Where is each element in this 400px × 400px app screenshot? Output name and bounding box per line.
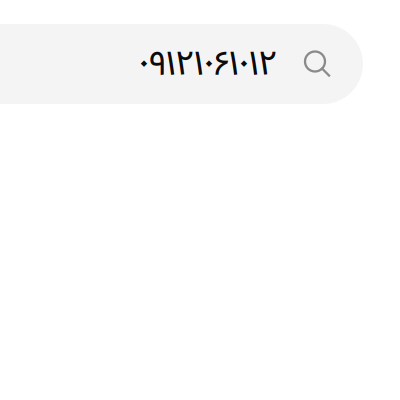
button[interactable]: ۰۹۱۲۱۰۶۱۰۱۲ [0,24,363,104]
staticText: ۰۹۱۲۱۰۶۱۰۱۲ [139,44,277,87]
